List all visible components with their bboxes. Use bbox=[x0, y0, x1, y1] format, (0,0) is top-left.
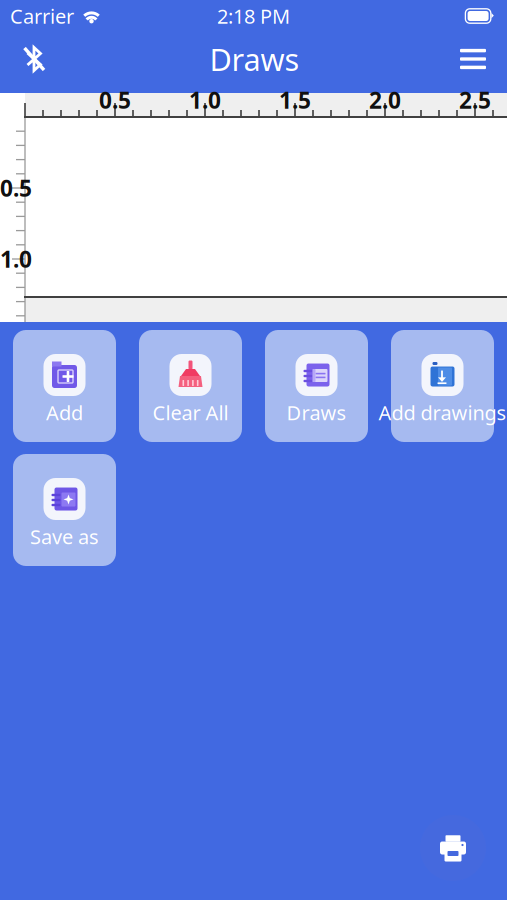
button[interactable]: Draws bbox=[265, 330, 368, 442]
staticText: 1.0 bbox=[0, 244, 32, 274]
button[interactable]: Add bbox=[13, 330, 116, 442]
staticText: 0.5 bbox=[99, 85, 131, 115]
button[interactable]: Bluetooth bbox=[0, 32, 70, 86]
staticText: Draws bbox=[209, 39, 299, 79]
button[interactable]: Clear All bbox=[139, 330, 242, 442]
staticText: Save as bbox=[30, 523, 99, 550]
button[interactable]: Save as bbox=[13, 454, 116, 566]
staticText: Clear All bbox=[152, 399, 228, 426]
button[interactable]: Print bbox=[420, 815, 486, 881]
staticText: Carrier bbox=[10, 3, 74, 29]
staticText: 2.0 bbox=[369, 85, 401, 115]
staticText: 2.5 bbox=[459, 85, 491, 115]
staticText: 1.0 bbox=[189, 85, 221, 115]
staticText: 0.5 bbox=[0, 173, 32, 203]
button[interactable]: Menu bbox=[439, 32, 507, 86]
staticText: 1.5 bbox=[279, 85, 311, 115]
staticText: 2:18 PM bbox=[217, 3, 290, 29]
staticText: Add bbox=[46, 399, 83, 426]
staticText: Draws bbox=[286, 399, 346, 426]
staticText: Add drawings bbox=[378, 399, 506, 426]
button[interactable]: Add drawings bbox=[391, 330, 494, 442]
